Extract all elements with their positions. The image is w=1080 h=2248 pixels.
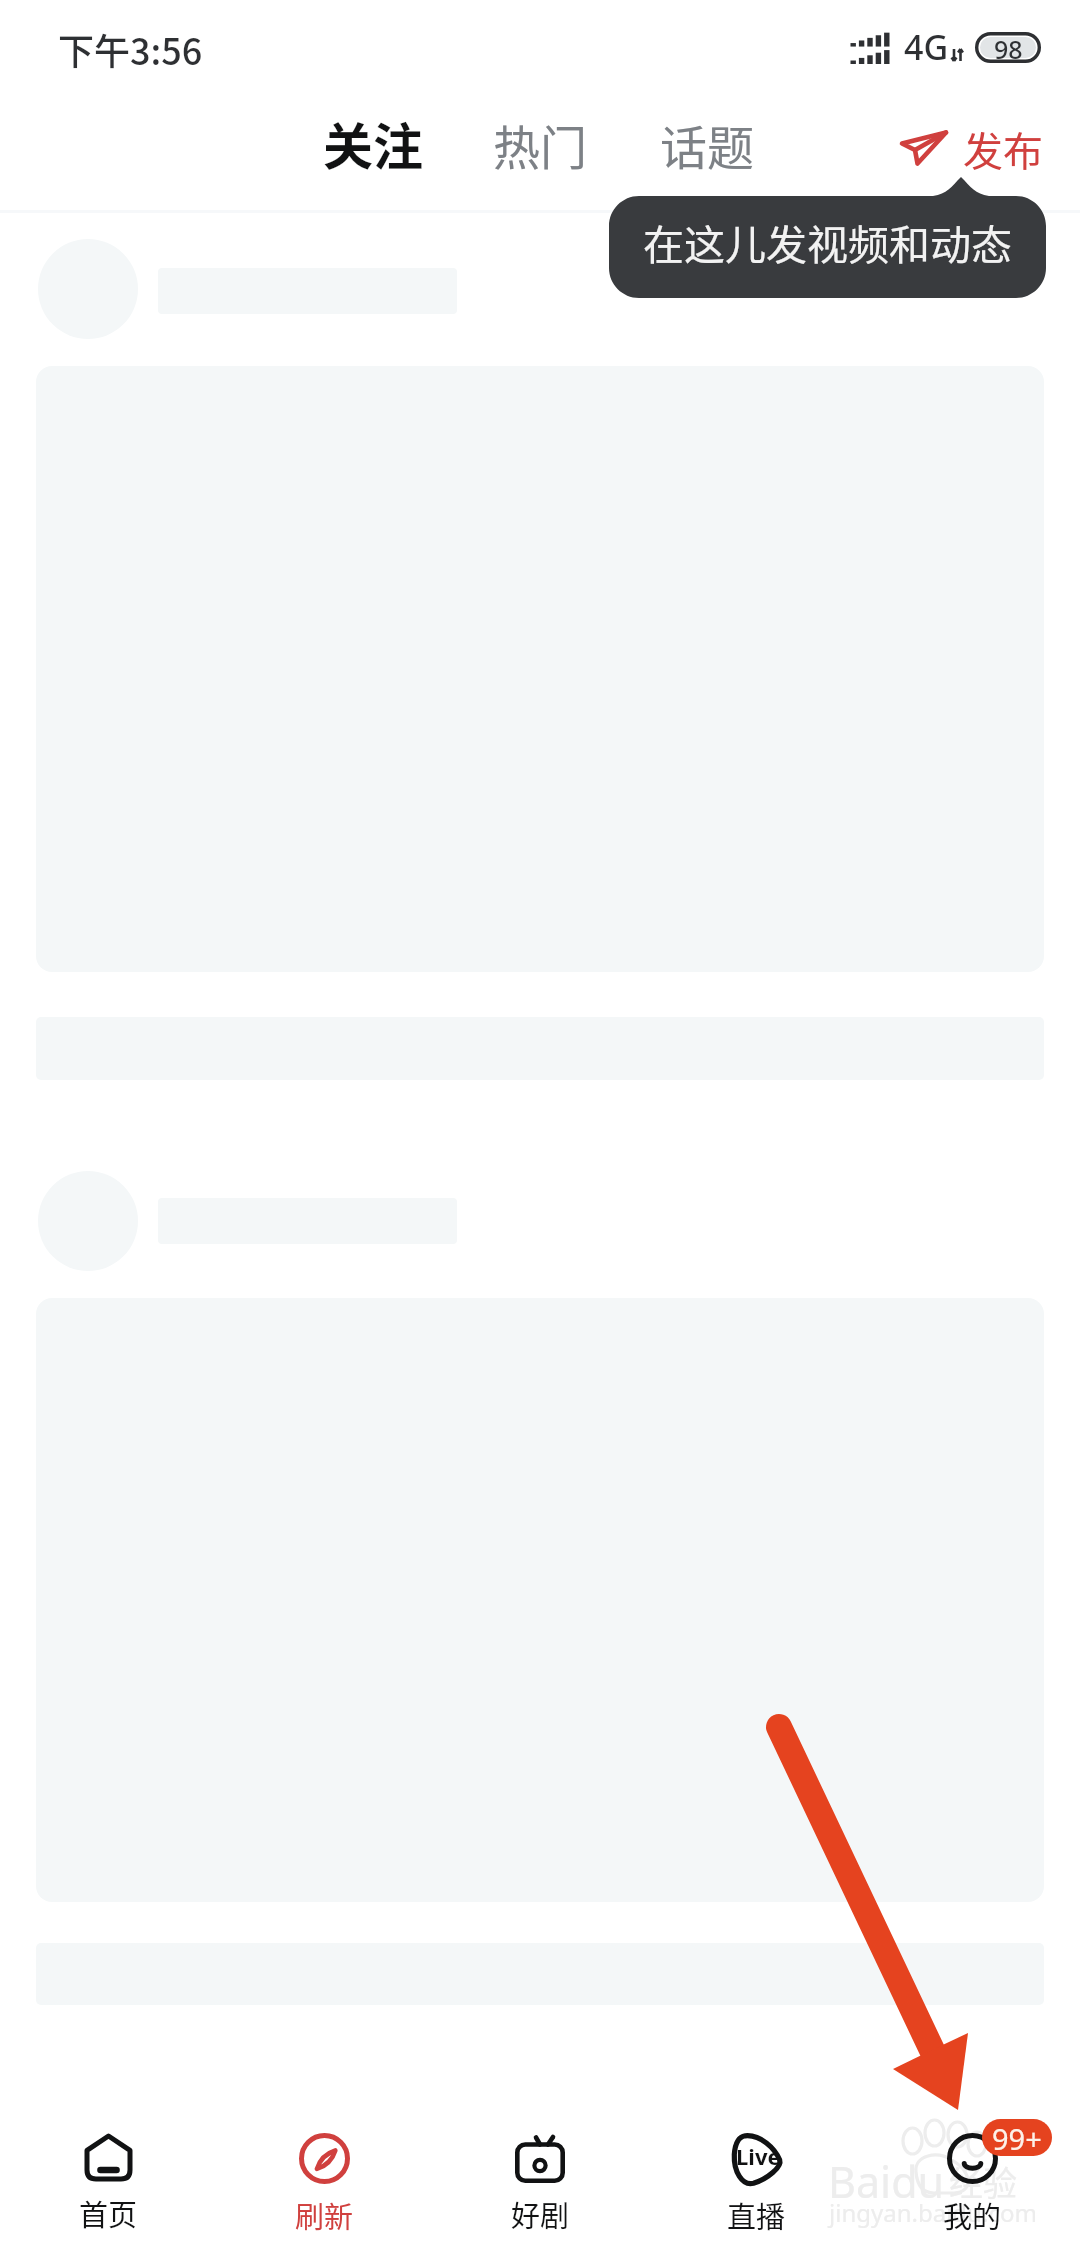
staticText: 好剧: [511, 2193, 570, 2235]
button[interactable]: 好剧: [432, 2118, 648, 2248]
staticText: Live: [736, 2141, 781, 2171]
staticText: 直播: [727, 2194, 786, 2236]
staticText: Baidu: [828, 2152, 945, 2211]
button[interactable]: Live: [648, 2118, 864, 2248]
staticText: jingyan.baidu.com: [829, 2196, 1037, 2229]
staticText: 发布: [963, 120, 1043, 178]
button[interactable]: 刷新: [216, 2118, 432, 2248]
staticText: 4G: [904, 24, 949, 70]
button[interactable]: 在这儿发视频和动态: [609, 177, 1046, 298]
button[interactable]: 首页: [0, 2118, 216, 2248]
staticText: 下午3:56: [58, 23, 203, 75]
staticText: 刷新: [295, 2194, 354, 2236]
staticText: 99+: [992, 2119, 1042, 2156]
button[interactable]: 话题: [642, 94, 772, 194]
button[interactable]: 热门: [475, 94, 605, 194]
button[interactable]: 发布: [886, 105, 1057, 191]
staticText: 经验: [949, 2157, 1017, 2206]
staticText: 首页: [79, 2192, 138, 2234]
button[interactable]: 99+: [864, 2118, 1080, 2248]
staticText: 在这儿发视频和动态: [609, 212, 1046, 271]
button[interactable]: 关注: [305, 91, 441, 195]
staticText: 98: [994, 32, 1023, 63]
staticText: 我的: [943, 2194, 1002, 2236]
